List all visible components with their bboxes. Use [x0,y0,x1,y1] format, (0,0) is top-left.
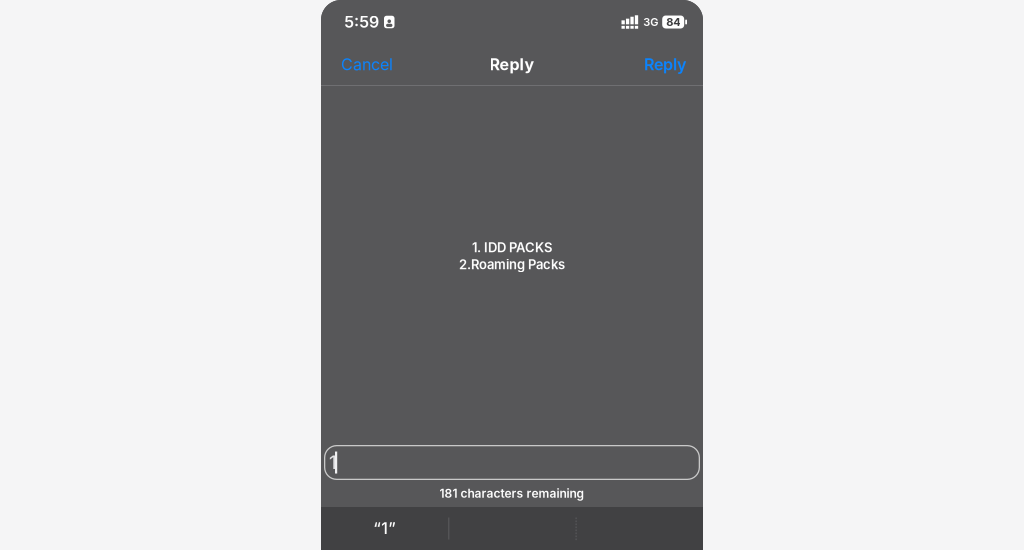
staticText: Reply [644,55,686,74]
staticText: 2.Roaming Packs [459,257,565,272]
staticText: Reply [489,55,534,74]
staticText: 181 characters remaining [439,486,584,501]
button[interactable]: “1” [321,507,448,550]
staticText: 1 [329,451,337,474]
staticText: 84 [666,15,680,28]
button[interactable]: Reply [644,55,686,74]
button[interactable]: Reply message text field [324,445,700,480]
staticText: Cancel [341,55,393,74]
staticText: “1” [373,519,396,538]
staticText: 3G [643,15,658,28]
staticText: 1. IDD PACKS [472,240,552,255]
button[interactable]: Cancel [341,55,393,74]
staticText: 5:59 [344,13,379,31]
